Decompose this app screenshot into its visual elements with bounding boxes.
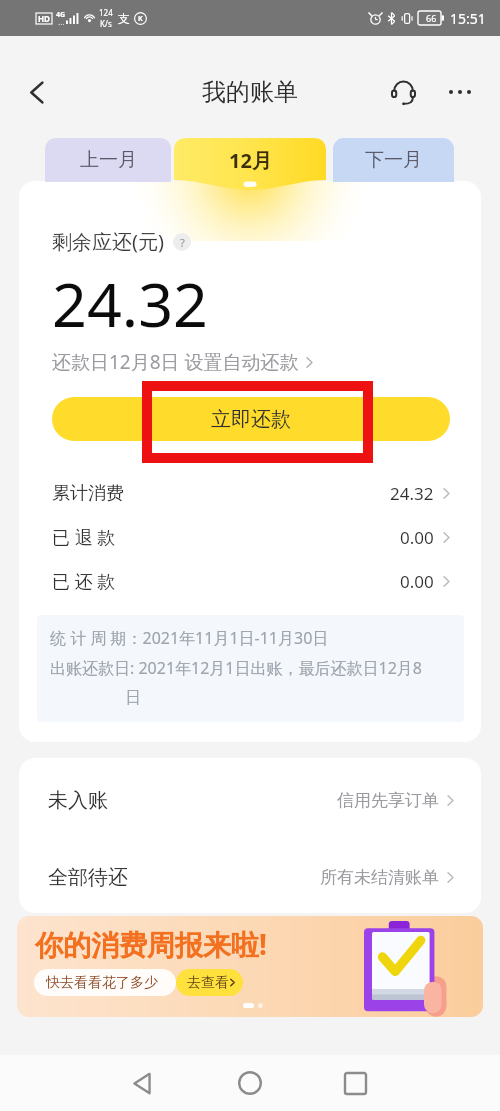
staticText: ? <box>180 235 185 250</box>
staticText: 信用先享订单 <box>337 790 439 811</box>
staticText: ⋯ <box>58 20 64 27</box>
staticText: 已 退 款 <box>52 525 116 550</box>
staticText: HD <box>38 13 50 24</box>
button[interactable]: Recent apps <box>323 1055 387 1111</box>
button[interactable]: 已 还 款 <box>52 559 450 603</box>
staticText: 12月 <box>229 147 272 174</box>
staticText: 66 <box>426 12 437 24</box>
staticText: 未入账 <box>48 788 108 813</box>
staticText: 剩余应还(元) <box>52 228 164 255</box>
button[interactable]: 你的消费周报来啦! <box>17 916 483 1017</box>
button[interactable]: 下一月 <box>333 138 454 182</box>
button[interactable]: 未入账 <box>48 758 454 842</box>
button[interactable]: 立即还款 <box>52 397 450 441</box>
button[interactable]: 累计消费 <box>52 471 450 515</box>
button[interactable]: Help <box>173 233 191 251</box>
staticText: 上一月 <box>80 148 137 172</box>
staticText: 15:51 <box>450 9 486 28</box>
staticText: 下一月 <box>365 148 422 172</box>
staticText: 124 <box>99 7 113 18</box>
staticText: K <box>138 14 143 24</box>
staticText: 24.32 <box>52 262 208 345</box>
button[interactable]: Back <box>110 1055 174 1111</box>
staticText: 出账还款日: 2021年12月1日出账，最后还款日12月8 <box>50 657 422 679</box>
staticText: 统 计 周 期：2021年11月1日-11月30日 <box>50 627 329 649</box>
staticText: K/s <box>100 18 112 29</box>
staticText: 累计消费 <box>52 482 124 505</box>
button[interactable]: Customer service <box>382 71 424 113</box>
button[interactable]: 12月 <box>174 138 326 190</box>
staticText: 0.00 <box>400 570 434 593</box>
staticText: 支 <box>118 11 130 26</box>
staticText: 日 <box>125 688 141 708</box>
staticText: 0.00 <box>400 526 434 549</box>
button[interactable]: Home <box>218 1055 282 1111</box>
staticText: 所有未结清账单 <box>320 867 439 888</box>
button[interactable]: 已 退 款 <box>52 515 450 559</box>
staticText: 我的账单 <box>202 77 298 107</box>
staticText: 还款日12月8日 设置自动还款 <box>52 349 299 375</box>
button[interactable]: More options <box>438 70 482 114</box>
staticText: 立即还款 <box>211 407 291 432</box>
button[interactable]: 全部待还 <box>48 842 454 913</box>
button[interactable]: 上一月 <box>45 138 171 182</box>
button[interactable]: Back <box>16 72 56 112</box>
button[interactable]: 还款日12月8日 设置自动还款 <box>52 349 313 375</box>
staticText: 去查看 <box>187 974 229 992</box>
staticText: 你的消费周报来啦! <box>35 925 267 963</box>
staticText: 全部待还 <box>48 865 128 890</box>
staticText: 已 还 款 <box>52 569 116 594</box>
staticText: 快去看看花了多少 <box>46 974 158 992</box>
staticText: 4G <box>56 10 66 20</box>
staticText: 24.32 <box>390 482 434 505</box>
